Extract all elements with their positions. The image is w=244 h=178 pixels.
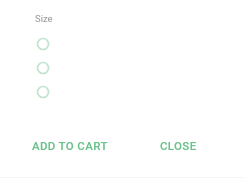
button[interactable]: Size option 3	[31, 80, 55, 104]
button[interactable]: Size option 1	[31, 32, 55, 56]
button[interactable]: CLOSE	[152, 133, 205, 158]
staticText: Size	[35, 13, 53, 24]
button[interactable]: ADD TO CART	[24, 133, 116, 158]
staticText: ADD TO CART	[32, 139, 108, 152]
staticText: CLOSE	[160, 139, 197, 152]
button[interactable]: Size option 2	[31, 56, 55, 80]
